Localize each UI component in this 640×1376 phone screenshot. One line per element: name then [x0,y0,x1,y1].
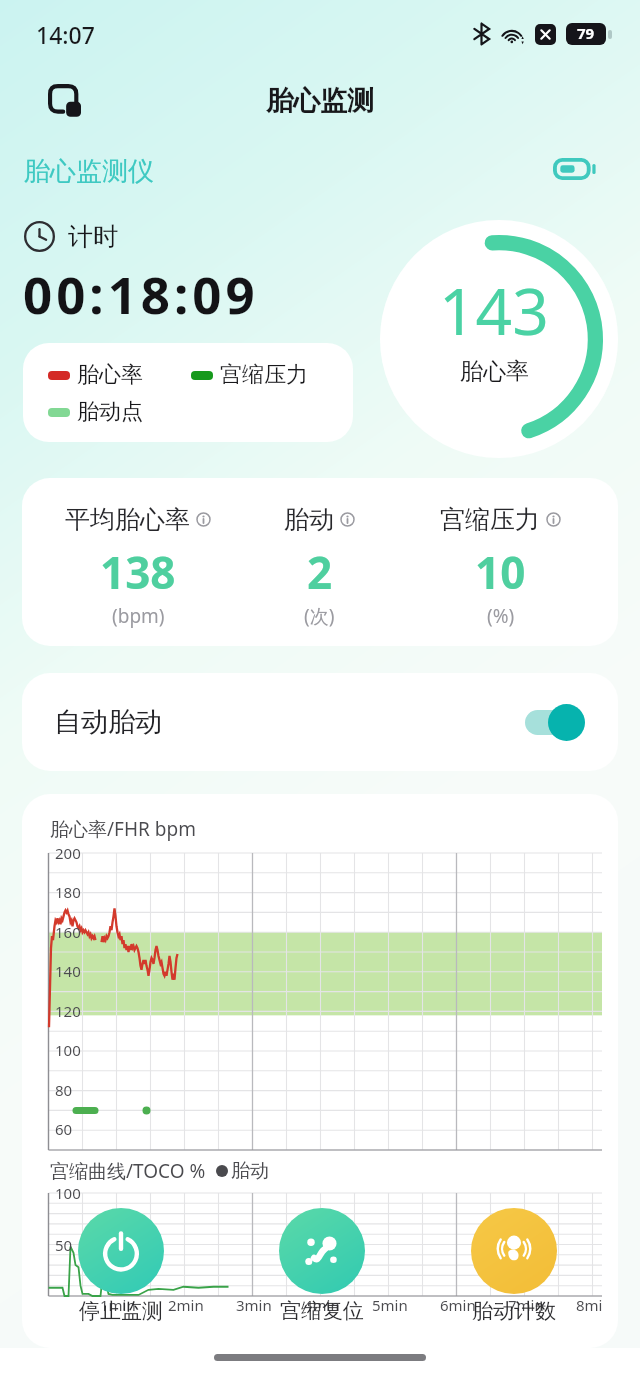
staticText: 200 [55,843,81,863]
staticText: (次) [304,603,335,629]
staticText: 8mi [576,1295,603,1315]
staticText: 120 [55,1001,81,1021]
staticText: 140 [55,961,81,981]
staticText: (%) [487,603,515,629]
staticText: 宫缩曲线/TOCO % [50,1158,206,1184]
staticText: 胎心率 [77,361,143,389]
staticText: 胎动计数 [472,1298,556,1324]
staticText: 2 [307,542,333,602]
button[interactable]: 宫缩复位 [229,1208,415,1324]
staticText: 7min [508,1295,544,1315]
staticText: 100 [55,1183,81,1203]
staticText: 胎心监测 [266,84,374,118]
staticText: 00:18:09 [23,259,259,328]
staticText: 停止监测 [79,1298,163,1324]
staticText: 自动胎动 [54,705,162,739]
staticText: 胎心率 [460,357,529,386]
staticText: (bpm) [112,603,165,629]
staticText: 4min [304,1295,340,1315]
staticText: 胎心监测仪 [24,155,154,188]
staticText: 100 [55,1040,81,1060]
staticText: 6min [440,1295,476,1315]
staticText: 3min [236,1295,272,1315]
staticText: 2min [168,1295,204,1315]
staticText: 80 [55,1080,73,1100]
staticText: 5min [372,1295,408,1315]
staticText: 60 [55,1119,73,1139]
staticText: 计时 [68,221,118,252]
button[interactable]: 自动胎动 [22,673,618,771]
staticText: 79 [577,23,595,43]
staticText: 50 [55,1235,73,1255]
staticText: 160 [55,922,81,942]
button[interactable]: 胎动计数 [421,1208,607,1324]
staticText: 138 [100,542,176,602]
button[interactable]: Picture in picture [38,74,90,126]
staticText: 14:07 [36,19,95,50]
staticText: 胎动点 [77,398,143,426]
staticText: 宫缩复位 [280,1298,364,1324]
staticText: 10 [475,542,526,602]
staticText: 平均胎心率 [65,504,190,535]
staticText: 胎心率/FHR bpm [50,816,196,842]
staticText: 胎动 [284,504,334,535]
staticText: 180 [55,882,81,902]
staticText: 宫缩压力 [440,504,540,535]
button[interactable]: 停止监测 [28,1208,214,1324]
staticText: 1min [100,1295,136,1315]
staticText: 143 [439,267,549,354]
staticText: 宫缩压力 [220,361,308,389]
staticText: 胎动 [231,1159,269,1183]
